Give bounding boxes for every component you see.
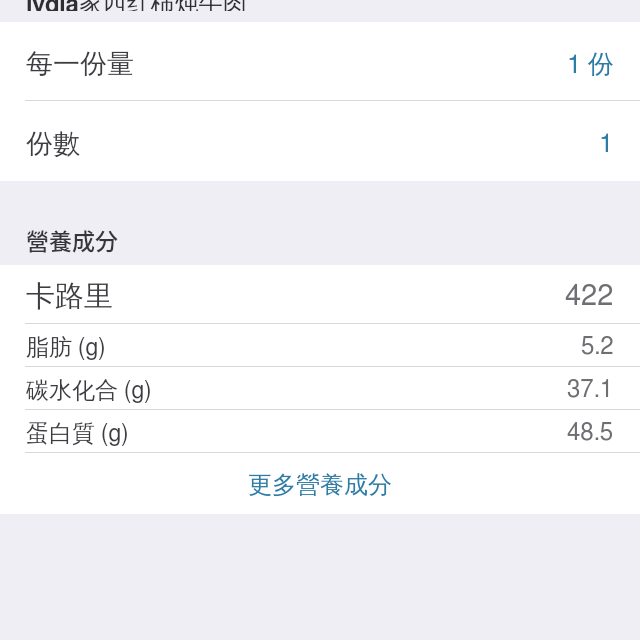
button[interactable]: 脂肪 (g) (0, 324, 640, 366)
staticText: 每一份量 (26, 47, 134, 81)
staticText: 37.1 (567, 378, 614, 402)
staticText: 5.2 (581, 335, 614, 359)
staticText: lydia家西红柿炖牛肉 (26, 0, 247, 11)
staticText: 碳水化合 (g) (26, 376, 152, 405)
staticText: 營養成分 (26, 223, 118, 256)
staticText: 份數 (26, 127, 80, 161)
staticText: 1 (599, 131, 614, 157)
staticText: 卡路里 (26, 278, 113, 315)
button[interactable]: 份數 (0, 101, 640, 181)
button[interactable]: 卡路里 (0, 265, 640, 323)
staticText: 蛋白質 (g) (26, 419, 129, 448)
button[interactable]: 更多營養成分 (0, 453, 640, 514)
staticText: 1 份 (567, 48, 614, 81)
staticText: 脂肪 (g) (26, 333, 106, 362)
staticText: 422 (565, 282, 614, 311)
staticText: 更多營養成分 (248, 470, 392, 500)
button[interactable]: 蛋白質 (g) (0, 410, 640, 452)
button[interactable]: 每一份量 (0, 22, 640, 100)
button[interactable]: 碳水化合 (g) (0, 367, 640, 409)
staticText: 48.5 (567, 421, 614, 445)
